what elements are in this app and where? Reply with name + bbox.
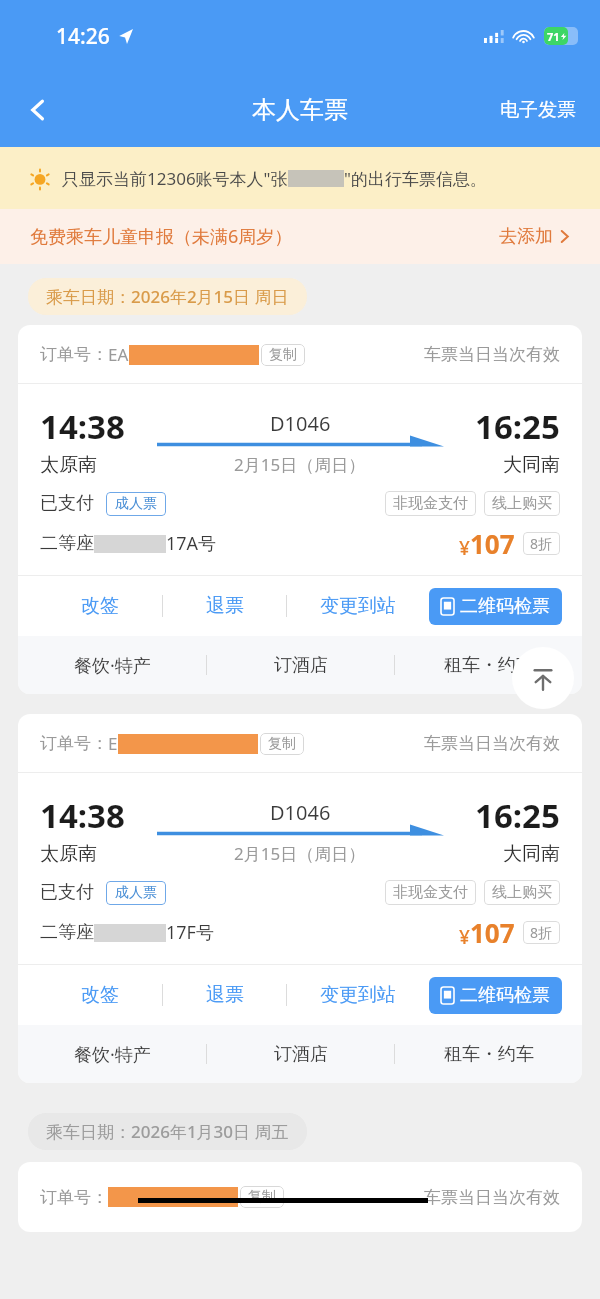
staticText: 2月15日（周日） — [234, 842, 366, 865]
staticText: 二维码检票 — [460, 595, 550, 618]
staticText: 车票当日当次有效 — [424, 344, 560, 365]
staticText: 非现金支付 — [393, 494, 468, 513]
staticText: 乘车日期：2026年1月30日 周五 — [46, 1120, 289, 1143]
staticText: 二维码检票 — [460, 984, 550, 1007]
button[interactable]: 餐饮·特产 — [18, 1025, 206, 1083]
button[interactable]: 餐饮·特产 — [18, 636, 206, 694]
staticText: 退票 — [206, 983, 244, 1007]
button[interactable]: 订单号： — [18, 714, 582, 1083]
staticText: 17F号 — [166, 920, 214, 945]
staticText: 16:25 — [475, 404, 560, 449]
button[interactable]: 改签 — [38, 965, 162, 1025]
staticText: 14:38 — [40, 793, 125, 838]
staticText: ¥ — [459, 924, 470, 950]
button[interactable]: 租车・约车 — [395, 1025, 582, 1083]
staticText: 71 — [547, 29, 560, 44]
staticText: 变更到站 — [320, 983, 396, 1007]
staticText: 线上购买 — [492, 494, 552, 513]
staticText: 餐饮·特产 — [74, 1042, 151, 1067]
staticText: 太原南 — [40, 453, 97, 477]
button[interactable]: 订酒店 — [207, 636, 394, 694]
staticText: 已支付 — [40, 881, 94, 904]
button[interactable]: 订酒店 — [207, 1025, 394, 1083]
staticText: 大同南 — [503, 842, 560, 866]
button[interactable]: 订单号： — [18, 325, 582, 694]
button[interactable]: 退票 — [163, 965, 286, 1025]
staticText: 复制 — [248, 1188, 276, 1206]
staticText: 订单号： — [40, 1187, 108, 1208]
staticText: 订酒店 — [274, 1043, 328, 1066]
staticText: 退票 — [206, 594, 244, 618]
staticText: 16:25 — [475, 793, 560, 838]
button[interactable]: 二维码检票 — [429, 977, 562, 1014]
staticText: 8折 — [530, 534, 553, 553]
staticText: 改签 — [81, 594, 119, 618]
staticText: 变更到站 — [320, 594, 396, 618]
staticText: 14:26 — [56, 22, 110, 51]
staticText: 订单号： — [40, 733, 108, 754]
staticText: 去添加 — [499, 225, 553, 248]
staticText: E — [108, 732, 118, 755]
staticText: D1046 — [270, 799, 331, 826]
button[interactable]: 改签 — [38, 576, 162, 636]
staticText: ¥ — [459, 535, 470, 561]
staticText: 复制 — [269, 346, 297, 364]
button[interactable]: 退票 — [163, 576, 286, 636]
button[interactable]: 变更到站 — [287, 965, 429, 1025]
staticText: 2月15日（周日） — [234, 453, 366, 476]
staticText: 乘车日期：2026年2月15日 周日 — [46, 285, 289, 308]
staticText: 免费乘车儿童申报（未满6周岁） — [30, 224, 293, 249]
staticText: 太原南 — [40, 842, 97, 866]
staticText: 14:38 — [40, 404, 125, 449]
button[interactable]: 二维码检票 — [429, 588, 562, 625]
staticText: 租车・约车 — [444, 654, 534, 677]
staticText: 107 — [470, 526, 515, 561]
staticText: 餐饮·特产 — [74, 653, 151, 678]
staticText: 复制 — [268, 735, 296, 753]
staticText: 成人票 — [115, 884, 157, 902]
staticText: 二等座 — [40, 921, 94, 944]
staticText: 107 — [470, 915, 515, 950]
staticText: 成人票 — [115, 495, 157, 513]
button[interactable]: Scroll to top — [512, 647, 574, 709]
staticText: 改签 — [81, 983, 119, 1007]
staticText: 订单号： — [40, 344, 108, 365]
staticText: 线上购买 — [492, 883, 552, 902]
button[interactable]: 电子发票 — [494, 92, 582, 128]
staticText: 大同南 — [503, 453, 560, 477]
staticText: EA — [108, 343, 129, 366]
button[interactable]: 订单号： — [18, 1162, 582, 1232]
staticText: 车票当日当次有效 — [424, 1187, 560, 1208]
staticText: 17A号 — [166, 531, 217, 556]
staticText: 已支付 — [40, 492, 94, 515]
staticText: D1046 — [270, 410, 331, 437]
staticText: "的出行车票信息。 — [344, 167, 487, 190]
staticText: 本人车票 — [252, 95, 348, 125]
staticText: 二等座 — [40, 532, 94, 555]
staticText: 只显示当前12306账号本人"张 — [62, 167, 288, 190]
staticText: 电子发票 — [500, 98, 576, 122]
staticText: 非现金支付 — [393, 883, 468, 902]
staticText: 车票当日当次有效 — [424, 733, 560, 754]
button[interactable]: 免费乘车儿童申报（未满6周岁） — [0, 209, 600, 264]
staticText: 租车・约车 — [444, 1043, 534, 1066]
staticText: 订酒店 — [274, 654, 328, 677]
button[interactable]: Back — [14, 86, 62, 134]
staticText: 8折 — [530, 923, 553, 942]
button[interactable]: 变更到站 — [287, 576, 429, 636]
button[interactable]: 租车・约车 — [395, 636, 582, 694]
